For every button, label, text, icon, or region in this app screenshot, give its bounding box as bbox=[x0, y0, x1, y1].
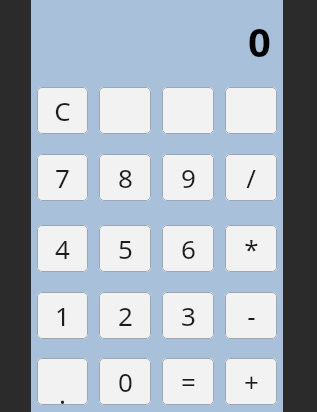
button[interactable]: 0 bbox=[99, 358, 151, 405]
staticText: 8 bbox=[118, 160, 133, 195]
staticText: - bbox=[247, 298, 256, 333]
staticText: 0 bbox=[118, 364, 133, 399]
button[interactable]: / bbox=[225, 154, 277, 201]
button[interactable]: 2 bbox=[99, 292, 151, 339]
staticText: 3 bbox=[181, 298, 196, 333]
staticText: 0 bbox=[248, 14, 271, 68]
button[interactable]: . bbox=[37, 358, 88, 405]
button[interactable]: Empty key bbox=[225, 87, 277, 134]
button[interactable]: = bbox=[162, 358, 214, 405]
staticText: + bbox=[244, 364, 259, 399]
button[interactable]: 5 bbox=[99, 225, 151, 272]
staticText: . bbox=[59, 376, 66, 405]
button[interactable]: 3 bbox=[162, 292, 214, 339]
staticText: / bbox=[246, 160, 256, 195]
button[interactable]: Empty key bbox=[162, 87, 214, 134]
staticText: 7 bbox=[55, 160, 70, 195]
button[interactable]: 7 bbox=[37, 154, 88, 201]
button[interactable]: 9 bbox=[162, 154, 214, 201]
button[interactable]: 6 bbox=[162, 225, 214, 272]
button[interactable]: - bbox=[225, 292, 277, 339]
button[interactable]: C bbox=[37, 87, 88, 134]
button[interactable]: 1 bbox=[37, 292, 88, 339]
staticText: 2 bbox=[118, 298, 133, 333]
staticText: 5 bbox=[118, 231, 133, 266]
staticText: 1 bbox=[55, 298, 70, 333]
button[interactable]: + bbox=[225, 358, 277, 405]
staticText: * bbox=[244, 231, 259, 266]
button[interactable]: 8 bbox=[99, 154, 151, 201]
staticText: C bbox=[54, 93, 71, 128]
staticText: = bbox=[181, 364, 196, 399]
button[interactable]: 4 bbox=[37, 225, 88, 272]
staticText: 6 bbox=[181, 231, 196, 266]
button[interactable]: Empty key bbox=[99, 87, 151, 134]
staticText: 9 bbox=[181, 160, 196, 195]
button[interactable]: * bbox=[225, 225, 277, 272]
staticText: 4 bbox=[55, 231, 70, 266]
